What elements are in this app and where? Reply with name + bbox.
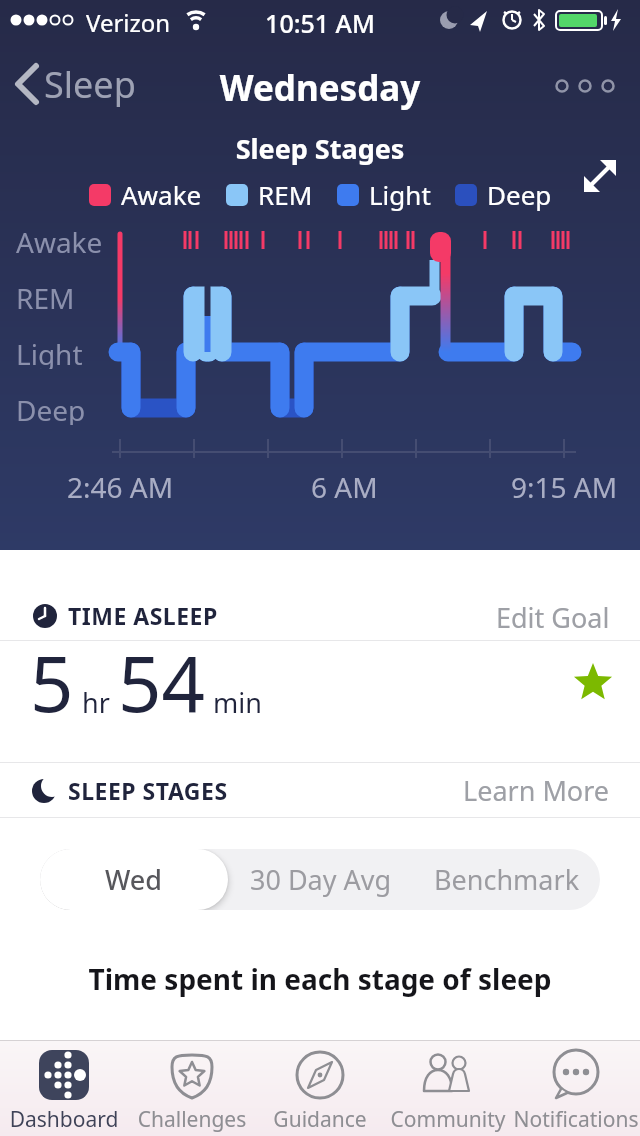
staticText: Edit Goal xyxy=(496,599,610,636)
staticText: Deep xyxy=(487,177,552,212)
button[interactable]: Community xyxy=(384,1041,512,1136)
staticText: 2:46 AM xyxy=(67,468,174,502)
staticText: Sleep xyxy=(44,60,136,109)
staticText: Wednesday xyxy=(0,64,640,112)
button[interactable]: Challenges xyxy=(128,1041,256,1136)
button[interactable]: Learn More xyxy=(463,772,640,809)
staticText: Notifications xyxy=(501,1105,640,1134)
staticText: Wed xyxy=(105,861,163,898)
staticText: min xyxy=(213,684,262,721)
button[interactable]: Notifications xyxy=(512,1041,640,1136)
button[interactable]: Sleep xyxy=(10,58,136,110)
staticText: Awake xyxy=(121,177,202,212)
staticText: Learn More xyxy=(463,772,610,809)
staticText: Verizon xyxy=(86,6,171,39)
button[interactable]: Edit Goal xyxy=(496,599,640,636)
staticText: hr xyxy=(82,684,110,721)
staticText: 30 Day Avg xyxy=(250,861,392,898)
button[interactable]: Guidance xyxy=(256,1041,384,1136)
button[interactable] xyxy=(548,70,624,102)
staticText: Time spent in each stage of sleep xyxy=(0,960,640,998)
staticText: 10:51 AM xyxy=(0,6,640,40)
staticText: 54 xyxy=(118,631,205,735)
staticText: Sleep Stages xyxy=(0,130,640,167)
staticText: Benchmark xyxy=(434,861,580,898)
staticText: Challenges xyxy=(117,1105,267,1134)
staticText: REM xyxy=(258,177,313,212)
button[interactable]: Benchmark xyxy=(414,849,600,910)
staticText: Community xyxy=(373,1105,523,1134)
staticText: Dashboard xyxy=(0,1105,139,1134)
staticText: REM xyxy=(16,279,75,313)
staticText: 9:15 AM xyxy=(511,468,618,502)
staticText: 6 AM xyxy=(311,468,378,502)
staticText: Awake xyxy=(16,223,103,257)
button[interactable]: 30 Day Avg xyxy=(228,849,414,910)
staticText: 5 xyxy=(30,631,74,735)
button[interactable]: Wed xyxy=(40,849,228,910)
staticText: Guidance xyxy=(245,1105,395,1134)
staticText: TIME ASLEEP xyxy=(68,600,218,631)
staticText: Light xyxy=(16,335,83,369)
staticText: SLEEP STAGES xyxy=(68,775,228,806)
button[interactable]: Dashboard xyxy=(0,1041,128,1136)
button[interactable] xyxy=(572,148,628,204)
staticText: Light xyxy=(369,177,431,212)
staticText: Deep xyxy=(16,391,86,425)
